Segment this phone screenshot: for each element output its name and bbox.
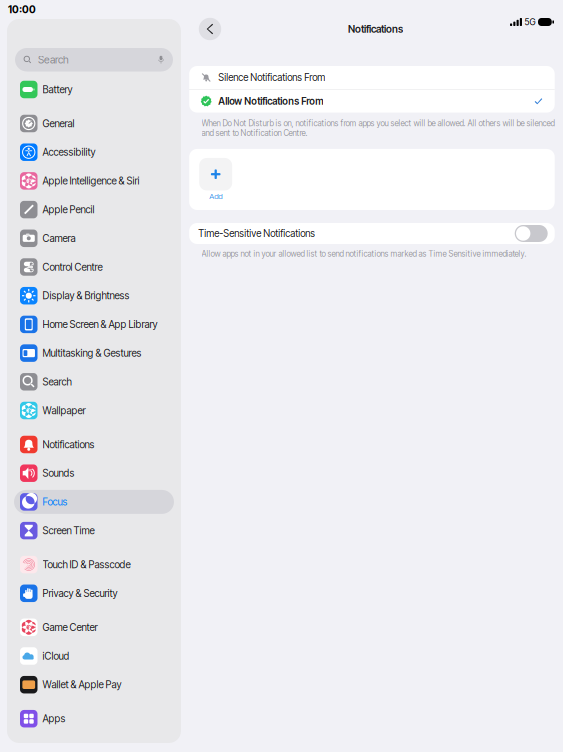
staticText: Allow Notifications From <box>218 95 323 107</box>
button[interactable]: Time-Sensitive Notifications <box>188 223 563 244</box>
button[interactable]: Silence Notifications From <box>189 66 555 89</box>
button[interactable]: General <box>14 111 174 135</box>
button[interactable]: Wallet & Apple Pay <box>14 673 174 697</box>
button[interactable]: Notifications <box>14 432 174 456</box>
staticText: Home Screen & App Library <box>42 318 157 330</box>
staticText: Silence Notifications From <box>218 72 325 83</box>
staticText: Multitasking & Gestures <box>42 347 141 359</box>
button[interactable]: Apple Intelligence & Siri <box>14 169 174 193</box>
staticText: Time-Sensitive Notifications <box>198 228 315 239</box>
staticText: Battery <box>42 83 72 96</box>
button[interactable]: Add <box>199 158 232 201</box>
button[interactable]: Apps <box>14 707 174 731</box>
staticText: When Do Not Disturb is on, notifications… <box>201 119 554 138</box>
button[interactable]: Home Screen & App Library <box>14 312 174 336</box>
staticText: iCloud <box>42 650 69 662</box>
staticText: Focus <box>42 496 67 508</box>
staticText: Notifications <box>42 438 94 451</box>
staticText: Game Center <box>42 621 97 633</box>
staticText: Wallpaper <box>42 404 85 417</box>
button[interactable]: Wallpaper <box>14 398 174 422</box>
button[interactable]: Focus <box>14 490 174 514</box>
button[interactable]: Battery <box>14 77 174 101</box>
staticText: Add <box>209 191 222 201</box>
button[interactable]: Touch ID & Passcode <box>14 553 174 577</box>
button[interactable]: Screen Time <box>14 519 174 543</box>
staticText: Search <box>42 376 71 388</box>
staticText: Allow apps not in your allowed list to s… <box>201 249 526 259</box>
button[interactable]: Camera <box>14 226 174 250</box>
button[interactable]: Accessibility <box>14 140 174 164</box>
staticText: Display & Brightness <box>42 290 129 302</box>
button[interactable]: Sounds <box>14 461 174 485</box>
button[interactable]: Multitasking & Gestures <box>14 341 174 365</box>
staticText: 5G <box>524 17 535 27</box>
staticText: Touch ID & Passcode <box>42 559 130 571</box>
button[interactable]: Search <box>14 370 174 394</box>
staticText: Camera <box>42 232 75 244</box>
staticText: Privacy & Security <box>42 587 117 599</box>
button[interactable]: Back <box>195 14 225 44</box>
staticText: Notifications <box>348 23 403 35</box>
button[interactable]: Display & Brightness <box>14 284 174 308</box>
button[interactable]: Allow Notifications From <box>189 90 555 113</box>
button[interactable]: iCloud <box>14 644 174 668</box>
staticText: Apple Intelligence & Siri <box>42 175 139 187</box>
button[interactable]: Game Center <box>14 615 174 639</box>
staticText: Accessibility <box>42 146 95 158</box>
button[interactable]: Control Centre <box>14 255 174 279</box>
staticText: 10:00 <box>8 3 36 16</box>
button[interactable]: Privacy & Security <box>14 581 174 605</box>
staticText: General <box>42 117 74 130</box>
staticText: Control Centre <box>42 261 102 273</box>
staticText: Sounds <box>42 467 74 479</box>
staticText: Screen Time <box>42 525 94 537</box>
staticText: Wallet & Apple Pay <box>42 679 121 691</box>
staticText: Apps <box>42 713 65 725</box>
button[interactable]: Apple Pencil <box>14 198 174 222</box>
staticText: Search <box>38 53 69 66</box>
staticText: Apple Pencil <box>42 204 94 216</box>
